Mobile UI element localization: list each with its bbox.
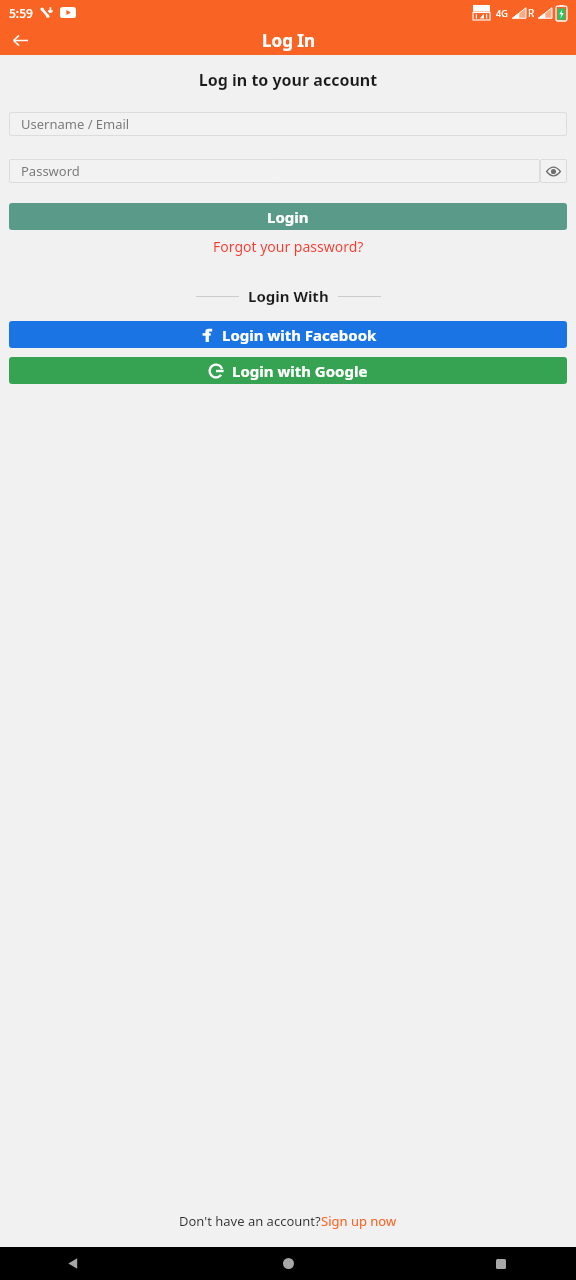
button[interactable]: Recent apps [488, 1251, 513, 1276]
staticText: Password [21, 162, 80, 180]
button[interactable]: Back [60, 1251, 85, 1276]
button[interactable]: Sign up now [321, 1212, 397, 1230]
staticText: R [528, 6, 535, 20]
staticText: Login [267, 207, 309, 227]
staticText: Forgot your password? [213, 237, 364, 256]
button[interactable]: Login with Facebook [9, 321, 567, 348]
button[interactable]: Login with Google [9, 357, 567, 384]
button[interactable]: Show password [540, 159, 567, 183]
staticText: Sign up now [321, 1212, 397, 1230]
button[interactable]: Password [9, 159, 540, 183]
staticText: 4G [496, 7, 508, 19]
button[interactable]: Home [276, 1251, 301, 1276]
staticText: Don't have an account? [179, 1212, 321, 1230]
button[interactable]: Username / Email [9, 112, 567, 136]
button[interactable]: Back [6, 26, 34, 54]
staticText: Log In [262, 29, 315, 52]
staticText: Login with Google [232, 361, 368, 381]
staticText: Login with Facebook [222, 325, 377, 345]
staticText: 5:59 [9, 5, 33, 21]
button[interactable]: Forgot your password? [0, 237, 576, 256]
staticText: Username / Email [21, 115, 130, 133]
button[interactable]: Login [9, 203, 567, 230]
staticText: Log in to your account [0, 69, 576, 91]
staticText: Login With [248, 286, 329, 306]
